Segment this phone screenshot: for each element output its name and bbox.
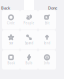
button[interactable]: Star [2, 30, 20, 49]
staticText: Star [9, 41, 13, 45]
staticText: People [23, 21, 34, 25]
button[interactable]: Info [38, 50, 56, 69]
button[interactable]: Back [1, 5, 10, 11]
staticText: Info [44, 61, 50, 65]
staticText: Send [43, 41, 50, 45]
staticText: Expand [24, 41, 33, 45]
button[interactable]: Send [38, 30, 56, 49]
staticText: Done [48, 5, 57, 11]
staticText: Book [7, 61, 14, 65]
button[interactable]: Bulb [20, 50, 38, 69]
staticText: Edit [44, 21, 49, 25]
button[interactable]: People [20, 10, 38, 30]
button[interactable]: Expand [20, 30, 38, 49]
staticText: Back [1, 5, 10, 11]
staticText: Bulb [25, 61, 32, 65]
button[interactable]: Circle [2, 10, 20, 30]
button[interactable]: Done [48, 5, 57, 11]
button[interactable]: Book [2, 50, 20, 69]
button[interactable]: Edit [38, 10, 56, 30]
staticText: Circle [7, 21, 15, 25]
